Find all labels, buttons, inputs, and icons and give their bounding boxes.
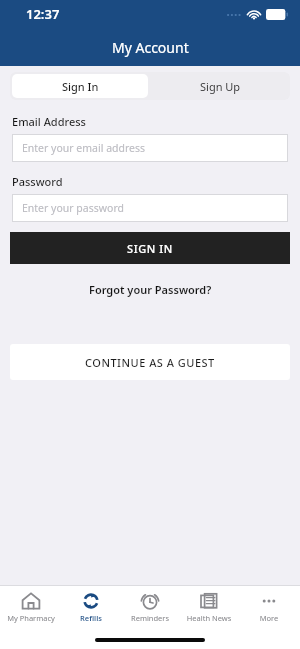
button[interactable]: Sign Up — [150, 72, 290, 100]
button[interactable]: Refills — [63, 591, 119, 623]
button[interactable]: Enter your email address — [12, 134, 288, 162]
staticText: Health News — [181, 613, 237, 623]
staticText: Sign In — [62, 79, 99, 94]
button[interactable]: CONTINUE AS A GUEST — [10, 344, 290, 380]
staticText: Refills — [63, 613, 119, 623]
button[interactable]: Sign In — [12, 74, 148, 98]
staticText: More — [241, 613, 297, 623]
button[interactable]: My Pharmacy — [3, 591, 59, 623]
button[interactable]: Forgot your Password? — [81, 279, 220, 300]
button[interactable]: Enter your password — [12, 194, 288, 222]
staticText: My Account — [112, 38, 189, 57]
staticText: Sign Up — [200, 79, 241, 94]
staticText: Email Address — [12, 114, 86, 129]
button[interactable]: More — [241, 591, 297, 623]
staticText: My Pharmacy — [3, 613, 59, 623]
staticText: Enter your email address — [22, 141, 146, 155]
button[interactable]: SIGN IN — [10, 232, 290, 264]
staticText: SIGN IN — [127, 241, 173, 256]
button[interactable]: Reminders — [122, 591, 178, 623]
staticText: Enter your password — [22, 201, 124, 215]
staticText: 12:37 — [26, 5, 60, 23]
button[interactable]: Health News — [181, 591, 237, 623]
staticText: Password — [12, 174, 63, 189]
staticText: CONTINUE AS A GUEST — [85, 355, 215, 370]
staticText: Reminders — [122, 613, 178, 623]
